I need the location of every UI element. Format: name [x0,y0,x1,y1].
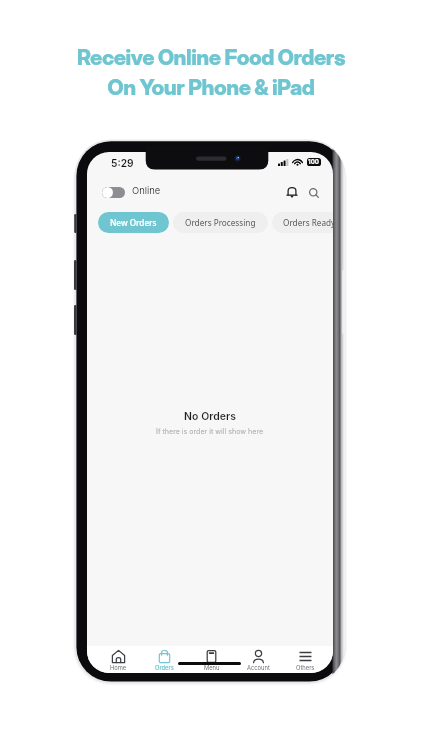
button[interactable]: Menu [188,646,235,673]
staticText: Account [247,664,270,671]
staticText: Orders Processing [185,217,256,228]
staticText: Receive Online Food Orders On Your Phone… [0,44,422,100]
button[interactable]: Orders Processing [173,212,268,233]
button[interactable]: Account [235,646,282,673]
button[interactable]: Orders [141,646,188,673]
button[interactable]: New Orders [98,212,169,233]
staticText: If there is order it will show here [156,427,264,436]
staticText: No Orders [184,410,237,423]
button[interactable]: Others [282,646,329,673]
staticText: Online [132,185,161,196]
staticText: New Orders [110,217,157,228]
button[interactable]: Search [305,180,323,198]
staticText: Orders [155,664,174,671]
button[interactable]: Home [95,646,141,673]
staticText: Home [110,664,127,671]
staticText: 5:29 [111,157,134,169]
button[interactable]: Online [102,187,161,198]
staticText: Menu [204,664,220,671]
button[interactable]: Notifications [283,180,301,198]
staticText: 100 [308,158,320,166]
button[interactable]: Orders Ready [272,212,333,233]
staticText: Orders Ready [283,217,333,228]
staticText: Others [296,664,315,671]
